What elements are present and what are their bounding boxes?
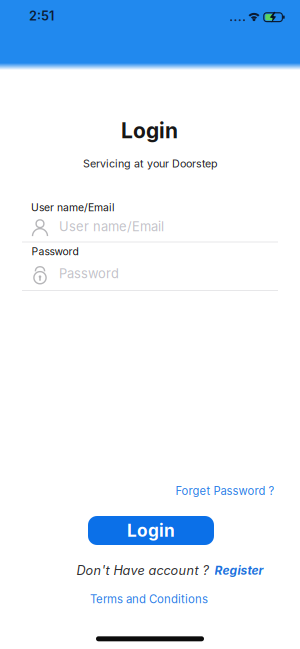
staticText: [59, 266, 63, 281]
button[interactable]: Forget Password ?: [175, 484, 274, 498]
button[interactable]: Register: [214, 563, 263, 578]
staticText: User name/Email: [31, 201, 115, 214]
staticText: Servicing at your Doorstep: [83, 157, 218, 170]
staticText: Don't Have account ?: [76, 563, 208, 578]
button[interactable]: Login: [88, 516, 214, 545]
staticText: Login: [127, 520, 175, 541]
staticText: User name/Email: [59, 219, 164, 234]
staticText: Register: [214, 563, 263, 578]
staticText: [59, 219, 63, 234]
staticText: Password: [31, 245, 78, 258]
button[interactable]: Terms and Conditions: [90, 592, 208, 606]
staticText: 2:51: [29, 8, 54, 24]
staticText: Password: [59, 266, 119, 281]
staticText: Forget Password ?: [175, 484, 274, 498]
staticText: Terms and Conditions: [90, 592, 208, 606]
staticText: Login: [121, 118, 178, 143]
textField[interactable]: [59, 266, 277, 281]
textField[interactable]: [59, 219, 277, 234]
